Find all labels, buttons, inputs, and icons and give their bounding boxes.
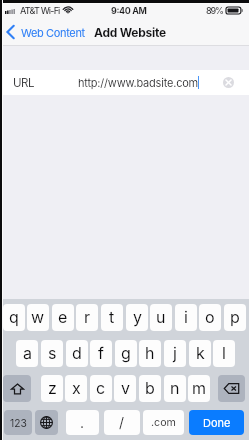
staticText: g: [121, 343, 131, 362]
button[interactable]: .com: [143, 410, 184, 435]
button[interactable]: Done: [189, 410, 244, 435]
staticText: 123: [10, 417, 27, 429]
staticText: d: [72, 343, 82, 362]
button[interactable]: k: [189, 340, 211, 367]
button[interactable]: v: [114, 375, 136, 402]
button[interactable]: Clear text: [223, 77, 234, 88]
button[interactable]: /: [104, 410, 140, 435]
staticText: k: [196, 343, 205, 362]
staticText: y: [133, 307, 142, 326]
button[interactable]: x: [65, 375, 87, 402]
staticText: a: [23, 343, 32, 362]
button[interactable]: Backspace: [218, 375, 245, 402]
button[interactable]: URL: [0, 70, 249, 95]
button[interactable]: j: [164, 340, 186, 367]
button[interactable]: m: [188, 375, 210, 402]
button[interactable]: Web Content: [6, 18, 85, 46]
button[interactable]: c: [90, 375, 112, 402]
staticText: u: [156, 307, 166, 326]
button[interactable]: q: [3, 304, 25, 331]
staticText: w: [31, 307, 45, 326]
button[interactable]: Number keyboard: [4, 410, 32, 435]
button[interactable]: u: [150, 304, 172, 331]
staticText: n: [170, 378, 180, 397]
staticText: 89%: [206, 5, 223, 16]
button[interactable]: h: [139, 340, 161, 367]
staticText: q: [9, 307, 19, 326]
staticText: AT&T Wi-Fi: [20, 5, 60, 16]
button[interactable]: s: [41, 340, 63, 367]
staticText: x: [72, 378, 81, 397]
staticText: b: [145, 378, 155, 397]
button[interactable]: p: [224, 304, 246, 331]
staticText: t: [109, 307, 115, 326]
staticText: s: [48, 343, 57, 362]
button[interactable]: w: [27, 304, 49, 331]
staticText: Add Website: [94, 25, 166, 40]
staticText: z: [48, 378, 57, 397]
staticText: http://www.badsite.com: [78, 76, 199, 89]
button[interactable]: n: [164, 375, 186, 402]
button[interactable]: d: [66, 340, 88, 367]
button[interactable]: g: [115, 340, 137, 367]
staticText: j: [173, 343, 177, 362]
button[interactable]: a: [16, 340, 38, 367]
staticText: p: [230, 307, 240, 326]
staticText: e: [58, 307, 68, 326]
staticText: i: [184, 307, 188, 326]
button[interactable]: Shift: [3, 375, 31, 402]
button[interactable]: e: [52, 304, 74, 331]
staticText: /: [119, 414, 125, 431]
staticText: URL: [13, 76, 34, 90]
button[interactable]: y: [126, 304, 148, 331]
button[interactable]: o: [199, 304, 221, 331]
staticText: m: [192, 378, 207, 397]
button[interactable]: t: [101, 304, 123, 331]
button[interactable]: Switch keyboard: [35, 410, 58, 435]
staticText: o: [205, 307, 215, 326]
staticText: .com: [151, 416, 176, 429]
staticText: 9:40 AM: [111, 5, 147, 16]
button[interactable]: z: [41, 375, 63, 402]
button[interactable]: i: [175, 304, 197, 331]
button[interactable]: f: [90, 340, 112, 367]
staticText: f: [98, 343, 104, 362]
button[interactable]: b: [139, 375, 161, 402]
button[interactable]: .: [66, 410, 99, 435]
staticText: Done: [203, 416, 231, 429]
staticText: l: [222, 343, 226, 362]
button[interactable]: l: [213, 340, 235, 367]
staticText: h: [145, 343, 155, 362]
staticText: c: [96, 378, 106, 397]
staticText: Web Content: [21, 26, 85, 39]
staticText: v: [121, 378, 130, 397]
button[interactable]: r: [76, 304, 98, 331]
staticText: r: [84, 307, 91, 326]
staticText: .: [80, 414, 85, 431]
